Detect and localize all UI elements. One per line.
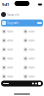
button[interactable] [1, 72, 21, 80]
button[interactable] [22, 45, 43, 53]
button[interactable] [22, 72, 43, 80]
button[interactable] [1, 45, 21, 53]
button[interactable] [22, 54, 43, 62]
button[interactable] [1, 54, 21, 62]
staticText: 9:41 [2, 2, 9, 7]
staticText: Upgrade [7, 21, 19, 25]
button[interactable] [1, 63, 21, 71]
button[interactable] [22, 36, 43, 44]
button[interactable] [1, 36, 21, 44]
button[interactable] [22, 63, 43, 71]
button[interactable] [1, 27, 21, 35]
button[interactable] [22, 27, 43, 35]
staticText: Search [7, 12, 19, 17]
button[interactable]: Upgrade [0, 19, 44, 26]
